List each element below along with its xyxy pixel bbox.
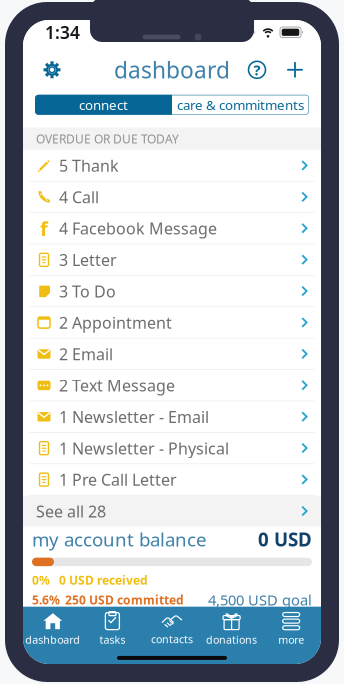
- staticText: dashboard: [114, 55, 230, 85]
- staticText: 1 Newsletter - Physical: [59, 438, 229, 459]
- staticText: 1 Pre Call Letter: [59, 469, 177, 490]
- staticText: ?: [253, 60, 260, 80]
- staticText: f: [40, 215, 48, 242]
- button[interactable]: care & commitments: [172, 95, 309, 115]
- button[interactable]: contacts: [142, 607, 202, 651]
- staticText: See all 28: [36, 501, 106, 522]
- staticText: 4 Facebook Message: [59, 218, 217, 239]
- button[interactable]: 3 To Do: [23, 276, 321, 307]
- staticText: 2 Appointment: [59, 312, 172, 333]
- staticText: donations: [206, 633, 257, 647]
- staticText: tasks: [99, 633, 125, 647]
- button[interactable]: 4 Call: [23, 182, 321, 213]
- button[interactable]: See all 28: [23, 496, 321, 527]
- staticText: 250 USD committed: [65, 592, 184, 608]
- staticText: 0 USD: [258, 527, 312, 552]
- button[interactable]: connect: [35, 95, 172, 115]
- button[interactable]: 2 Text Message: [23, 370, 321, 401]
- staticText: 4,500 USD goal: [208, 590, 312, 610]
- staticText: 0%: [32, 572, 50, 588]
- button[interactable]: f: [23, 213, 321, 244]
- staticText: dashboard: [25, 633, 80, 647]
- button[interactable]: Add: [279, 52, 311, 88]
- button[interactable]: 1 Newsletter - Email: [23, 401, 321, 433]
- staticText: care & commitments: [177, 96, 304, 114]
- staticText: 2 Email: [59, 343, 113, 365]
- button[interactable]: 1 Newsletter - Physical: [23, 433, 321, 464]
- button[interactable]: 2 Email: [23, 339, 321, 370]
- staticText: 0 USD received: [59, 572, 148, 588]
- staticText: OVERDUE OR DUE TODAY: [36, 131, 179, 147]
- staticText: 2 Text Message: [59, 375, 175, 396]
- button[interactable]: 2 Appointment: [23, 307, 321, 339]
- staticText: contacts: [151, 632, 193, 646]
- button[interactable]: dashboard: [23, 607, 83, 651]
- staticText: 1 Newsletter - Email: [59, 406, 209, 427]
- staticText: 4 Call: [59, 186, 99, 208]
- staticText: my account balance: [32, 527, 207, 552]
- staticText: connect: [79, 96, 128, 114]
- staticText: 3 Letter: [59, 249, 117, 270]
- button[interactable]: Settings: [33, 52, 71, 88]
- button[interactable]: 3 Letter: [23, 244, 321, 276]
- button[interactable]: donations: [202, 607, 261, 651]
- staticText: 5.6%: [32, 592, 60, 608]
- button[interactable]: Help: [241, 52, 273, 88]
- button[interactable]: 1 Pre Call Letter: [23, 464, 321, 496]
- button[interactable]: more: [261, 607, 321, 651]
- staticText: 1:34: [45, 21, 80, 44]
- staticText: 3 To Do: [59, 281, 116, 302]
- staticText: more: [278, 633, 304, 647]
- staticText: 5 Thank: [59, 155, 119, 176]
- button[interactable]: tasks: [83, 607, 142, 651]
- button[interactable]: 5 Thank: [23, 150, 321, 182]
